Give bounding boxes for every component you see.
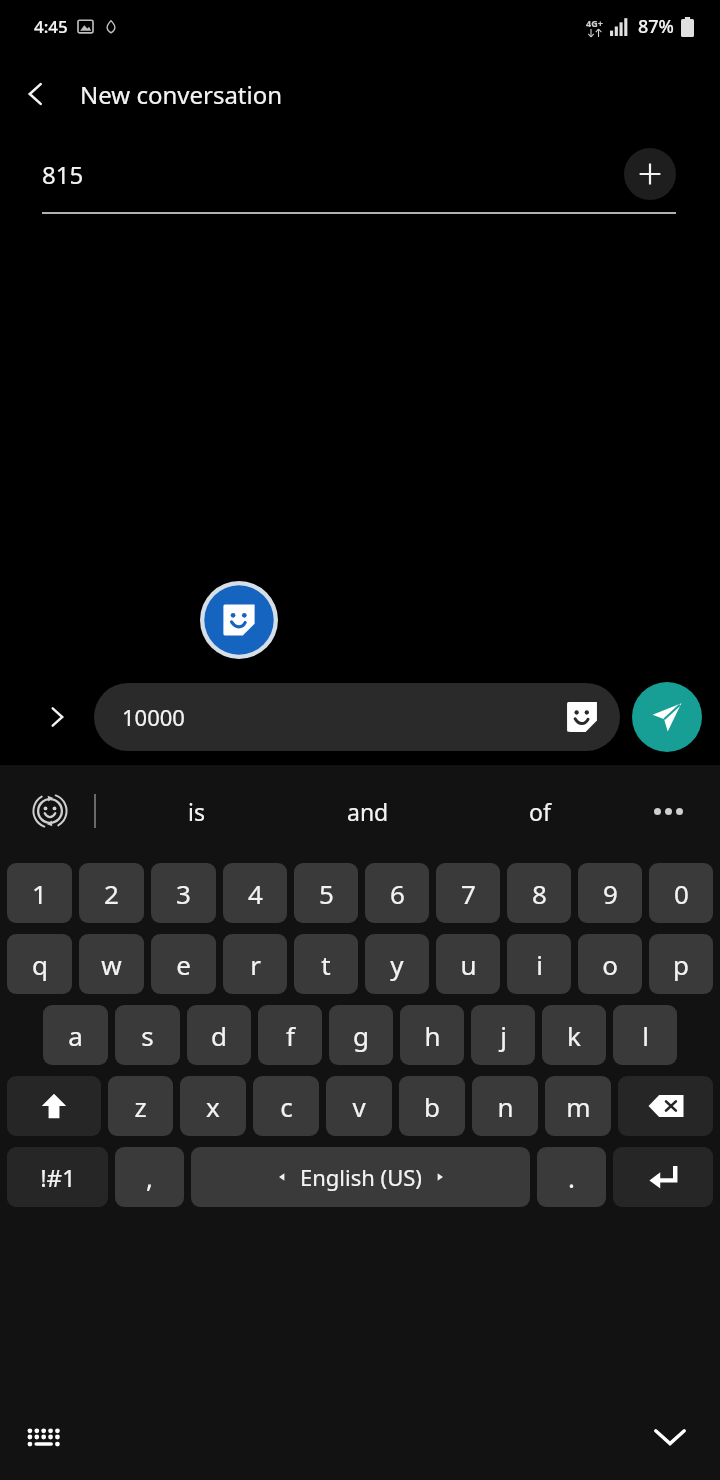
button[interactable]: . xyxy=(537,1147,606,1207)
button[interactable]: v xyxy=(326,1076,392,1136)
button[interactable]: l xyxy=(613,1005,677,1065)
staticText: n xyxy=(497,1089,514,1124)
staticText: d xyxy=(211,1018,227,1053)
button[interactable]: q xyxy=(7,934,72,994)
staticText: of xyxy=(529,796,551,827)
button[interactable]: English (US) xyxy=(191,1147,530,1207)
button[interactable]: s xyxy=(115,1005,180,1065)
button[interactable]: o xyxy=(578,934,642,994)
button[interactable]: Add recipient xyxy=(624,148,676,200)
button[interactable]: z xyxy=(108,1076,173,1136)
button[interactable]: and xyxy=(282,765,454,857)
staticText: g xyxy=(353,1018,369,1053)
button[interactable]: Send xyxy=(632,682,702,752)
staticText: s xyxy=(141,1018,154,1053)
button[interactable]: 8 xyxy=(507,863,571,923)
button[interactable]: Shift xyxy=(7,1076,101,1136)
staticText: , xyxy=(146,1160,153,1195)
staticText: 4G+ xyxy=(586,17,603,29)
staticText: 4 xyxy=(248,876,263,911)
staticText: and xyxy=(347,796,389,827)
button[interactable]: k xyxy=(542,1005,606,1065)
staticText: l xyxy=(642,1018,649,1053)
button[interactable]: u xyxy=(436,934,500,994)
button[interactable]: p xyxy=(649,934,713,994)
button[interactable]: g xyxy=(329,1005,393,1065)
staticText: 1 xyxy=(32,876,47,911)
button[interactable]: of xyxy=(454,765,626,857)
staticText: 7 xyxy=(461,876,476,911)
staticText: 87% xyxy=(638,14,674,39)
button[interactable]: d xyxy=(187,1005,251,1065)
button[interactable]: 9 xyxy=(578,863,642,923)
button[interactable]: b xyxy=(399,1076,465,1136)
button[interactable]: y xyxy=(365,934,429,994)
button[interactable]: t xyxy=(294,934,358,994)
staticText: 3 xyxy=(176,876,191,911)
button[interactable]: 0 xyxy=(649,863,713,923)
button[interactable]: 5 xyxy=(294,863,358,923)
button[interactable]: 4 xyxy=(223,863,287,923)
button[interactable]: Keyboard settings xyxy=(20,1413,68,1461)
button[interactable]: , xyxy=(115,1147,184,1207)
staticText: 4:45 xyxy=(34,15,68,38)
staticText: a xyxy=(68,1018,83,1053)
staticText: v xyxy=(352,1089,366,1124)
button[interactable]: Stickers app xyxy=(199,580,279,660)
staticText: 815 xyxy=(42,158,624,191)
staticText: !#1 xyxy=(40,1161,76,1194)
staticText: o xyxy=(602,947,618,982)
staticText: k xyxy=(567,1018,581,1053)
staticText: . xyxy=(568,1160,575,1195)
staticText: h xyxy=(424,1018,441,1053)
button[interactable]: 6 xyxy=(365,863,429,923)
button[interactable]: Hide keyboard xyxy=(642,1409,698,1465)
staticText: is xyxy=(188,796,205,827)
button[interactable]: h xyxy=(400,1005,464,1065)
staticText: b xyxy=(424,1089,440,1124)
button[interactable]: 10000 xyxy=(94,683,620,751)
button[interactable]: 2 xyxy=(79,863,144,923)
button[interactable]: c xyxy=(253,1076,319,1136)
staticText: 5 xyxy=(319,876,334,911)
staticText: x xyxy=(206,1089,220,1124)
staticText: 10000 xyxy=(122,702,560,732)
button[interactable]: 1 xyxy=(7,863,72,923)
button[interactable]: Expand xyxy=(34,694,80,740)
button[interactable]: j xyxy=(471,1005,535,1065)
staticText: j xyxy=(500,1018,507,1053)
button[interactable]: m xyxy=(545,1076,611,1136)
staticText: f xyxy=(286,1018,295,1053)
staticText: 6 xyxy=(390,876,405,911)
button[interactable]: More options xyxy=(642,785,694,837)
staticText: y xyxy=(390,947,404,982)
button[interactable]: f xyxy=(258,1005,322,1065)
button[interactable]: e xyxy=(151,934,216,994)
button[interactable]: is xyxy=(110,765,282,857)
button[interactable]: Insert sticker xyxy=(560,695,604,739)
staticText: New conversation xyxy=(80,78,283,111)
button[interactable]: 7 xyxy=(436,863,500,923)
button[interactable]: w xyxy=(79,934,144,994)
staticText: English (US) xyxy=(300,1162,422,1192)
staticText: t xyxy=(321,947,331,982)
staticText: e xyxy=(176,947,191,982)
staticText: z xyxy=(134,1089,147,1124)
button[interactable]: Emoji xyxy=(22,783,78,839)
button[interactable]: 3 xyxy=(151,863,216,923)
button[interactable]: !#1 xyxy=(7,1147,108,1207)
button[interactable]: i xyxy=(507,934,571,994)
staticText: q xyxy=(32,947,48,982)
button[interactable]: Enter xyxy=(613,1147,713,1207)
button[interactable]: Backspace xyxy=(618,1076,713,1136)
button[interactable]: a xyxy=(43,1005,108,1065)
staticText: 9 xyxy=(603,876,618,911)
button[interactable]: r xyxy=(223,934,287,994)
button[interactable]: n xyxy=(472,1076,538,1136)
staticText: c xyxy=(280,1089,293,1124)
staticText: r xyxy=(250,947,261,982)
button[interactable]: Back xyxy=(0,58,72,130)
staticText: i xyxy=(536,947,543,982)
staticText: u xyxy=(460,947,477,982)
button[interactable]: x xyxy=(180,1076,246,1136)
